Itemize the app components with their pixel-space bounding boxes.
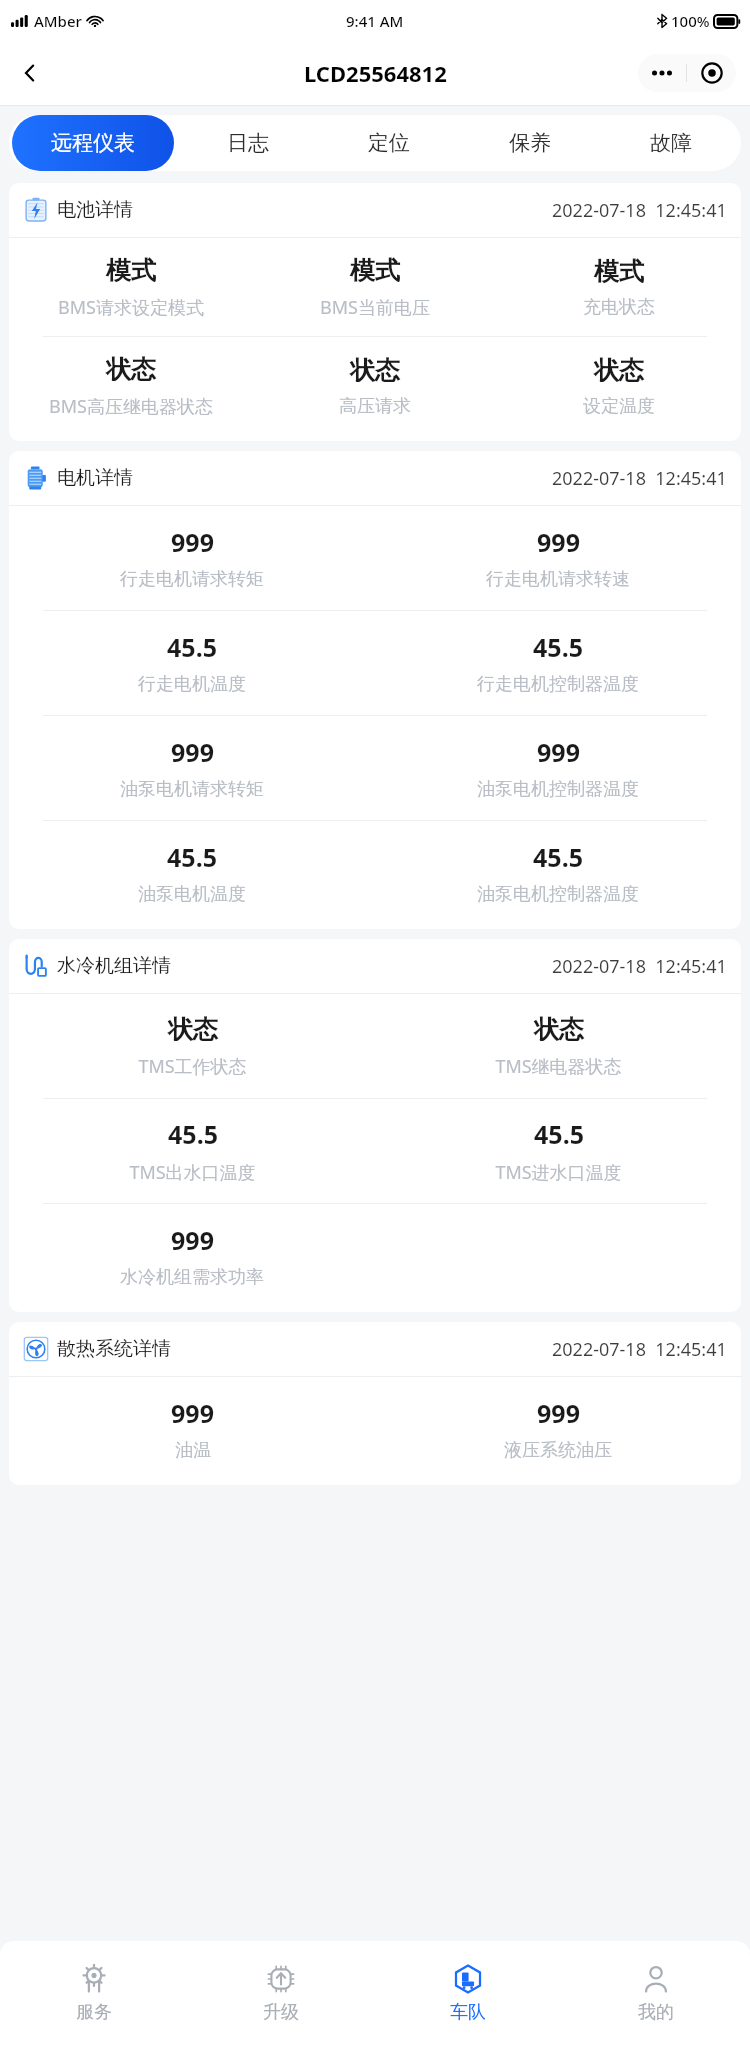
staticText: 电池详情 [57,198,133,222]
staticText: 油泵电机控制器温度 [477,883,639,906]
staticText: 油泵电机温度 [138,883,246,906]
staticText: 9:41 AM [346,11,404,31]
staticText: LCD25564812 [304,58,447,88]
button[interactable]: Target [687,54,736,92]
staticText: 999 [537,735,580,769]
staticText: 状态 [350,355,400,386]
staticText: 水冷机组需求功率 [120,1266,264,1289]
staticText: AMber [34,11,82,31]
button[interactable]: 我的 [562,1941,750,2046]
staticText: 模式 [594,256,644,287]
staticText: 车队 [450,2001,486,2024]
staticText: 定位 [368,130,410,156]
staticText: 999 [171,1223,214,1257]
button[interactable]: 电池详情 [9,183,741,441]
staticText: 2022-07-18 12:45:41 [552,198,727,223]
staticText: 散热系统详情 [57,1337,171,1361]
staticText: 45.5 [167,840,217,874]
staticText: 行走电机温度 [138,673,246,696]
staticText: 999 [537,525,580,559]
staticText: 行走电机请求转速 [486,568,630,591]
button[interactable]: 日志 [177,115,318,171]
staticText: TMS进水口温度 [495,1160,622,1185]
staticText: 状态 [594,355,644,386]
staticText: 电机详情 [57,466,133,490]
staticText: 45.5 [534,1117,584,1151]
staticText: BMS当前电压 [320,295,430,320]
staticText: 2022-07-18 12:45:41 [552,466,727,491]
staticText: 45.5 [533,630,583,664]
staticText: 45.5 [167,630,217,664]
button[interactable]: 升级 [187,1941,374,2046]
staticText: 状态 [106,354,156,385]
staticText: 升级 [263,2001,299,2024]
staticText: 行走电机请求转矩 [120,568,264,591]
staticText: 日志 [227,130,269,156]
staticText: BMS请求设定模式 [58,295,204,320]
staticText: 液压系统油压 [504,1439,612,1462]
staticText: TMS继电器状态 [495,1054,622,1079]
staticText: 状态 [168,1014,218,1045]
staticText: 模式 [350,255,400,286]
staticText: 故障 [650,130,692,156]
staticText: 45.5 [168,1117,218,1151]
button[interactable]: 电机详情 [9,451,741,929]
staticText: 999 [537,1396,580,1430]
staticText: 45.5 [533,840,583,874]
button[interactable]: 服务 [0,1941,187,2046]
staticText: 999 [171,735,214,769]
staticText: 油泵电机请求转矩 [120,778,264,801]
button[interactable]: 水冷机组详情 [9,939,741,1312]
staticText: 水冷机组详情 [57,954,171,978]
staticText: 模式 [106,255,156,286]
staticText: TMS出水口温度 [129,1160,256,1185]
staticText: 保养 [509,130,551,156]
button[interactable]: 故障 [600,115,741,171]
button[interactable]: 保养 [459,115,600,171]
staticText: 100% [671,11,710,31]
staticText: 2022-07-18 12:45:41 [552,954,727,979]
button[interactable]: 远程仪表 [12,115,174,171]
staticText: 我的 [638,2001,674,2024]
staticText: BMS高压继电器状态 [49,394,213,419]
button[interactable]: Back [6,49,54,97]
staticText: 2022-07-18 12:45:41 [552,1337,727,1362]
staticText: 油泵电机控制器温度 [477,778,639,801]
button[interactable]: 车队 [374,1941,562,2046]
staticText: 油温 [175,1439,211,1462]
button[interactable]: 定位 [318,115,459,171]
staticText: 设定温度 [583,395,655,418]
staticText: 行走电机控制器温度 [477,673,639,696]
staticText: 服务 [76,2001,112,2024]
staticText: 999 [171,1396,214,1430]
staticText: 高压请求 [339,395,411,418]
staticText: TMS工作状态 [138,1054,247,1079]
button[interactable]: More options [638,54,686,92]
staticText: 状态 [534,1014,584,1045]
staticText: 999 [171,525,214,559]
staticText: 充电状态 [583,296,655,319]
button[interactable]: 散热系统详情 [9,1322,741,1485]
staticText: 远程仪表 [51,130,135,156]
